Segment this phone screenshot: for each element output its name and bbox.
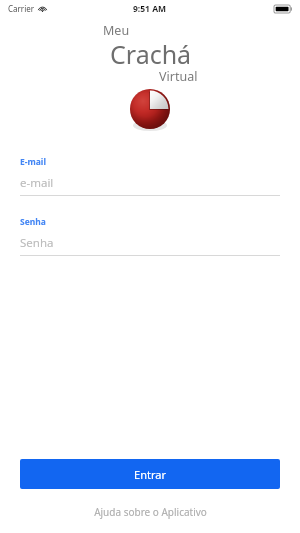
staticText: Crachá [110,37,192,71]
staticText: Meu [103,22,130,39]
staticText: 9:51 AM [133,3,167,15]
staticText: Virtual [159,68,198,85]
button[interactable]: Entrar [20,459,280,489]
button[interactable]: E-mail [20,156,280,196]
staticText: Senha [20,235,54,251]
staticText: e-mail [20,175,54,191]
staticText: Entrar [134,467,166,482]
staticText: Senha [20,216,46,228]
button[interactable]: Senha [20,216,280,256]
button[interactable]: Ajuda sobre o Aplicativo [0,505,300,519]
staticText: E-mail [20,156,46,168]
staticText: Ajuda sobre o Aplicativo [94,505,207,519]
staticText: Carrier [8,3,35,14]
